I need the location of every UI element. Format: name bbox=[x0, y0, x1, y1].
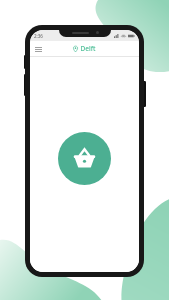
button[interactable]: Open shopping basket bbox=[58, 132, 111, 185]
button[interactable]: Delft bbox=[73, 44, 96, 53]
button[interactable]: Open navigation menu bbox=[33, 44, 43, 54]
staticText: Delft bbox=[80, 44, 96, 53]
staticText: 2:36 bbox=[34, 33, 43, 39]
